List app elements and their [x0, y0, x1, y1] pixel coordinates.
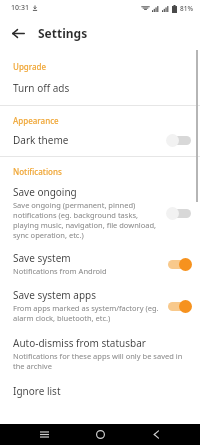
- staticText: Save ongoing (permanent, pinned) notific…: [13, 200, 161, 240]
- staticText: Auto-dismiss from statusbar: [13, 336, 146, 350]
- staticText: Notifications: [13, 166, 62, 177]
- staticText: Appearance: [13, 115, 59, 126]
- staticText: Notifications for these apps will only b…: [13, 351, 192, 371]
- staticText: Notifications from Android: [13, 266, 107, 276]
- button[interactable]: Save system: [0, 245, 200, 282]
- button[interactable]: Turn off ads: [0, 75, 200, 105]
- staticText: 10:31: [11, 3, 29, 13]
- button[interactable]: Save system apps: [0, 282, 200, 329]
- staticText: 81%: [180, 4, 193, 13]
- staticText: Save system: [13, 251, 71, 265]
- button[interactable]: Save ongoing: [0, 180, 200, 245]
- button[interactable]: Recents: [32, 424, 56, 445]
- staticText: Dark theme: [13, 133, 69, 147]
- staticText: Settings: [38, 25, 88, 41]
- button[interactable]: Home: [88, 424, 112, 445]
- staticText: Save system apps: [13, 288, 96, 302]
- button[interactable]: Back: [144, 424, 168, 445]
- button[interactable]: Ignore list: [0, 377, 200, 404]
- staticText: From apps marked as system/factory (eg. …: [13, 303, 161, 323]
- staticText: Upgrade: [13, 61, 47, 72]
- staticText: Ignore list: [13, 384, 61, 398]
- staticText: Save ongoing: [13, 185, 77, 199]
- button[interactable]: Back: [6, 21, 30, 45]
- button[interactable]: Auto-dismiss from statusbar: [0, 329, 200, 377]
- staticText: Turn off ads: [13, 81, 70, 95]
- button[interactable]: Dark theme: [0, 128, 200, 156]
